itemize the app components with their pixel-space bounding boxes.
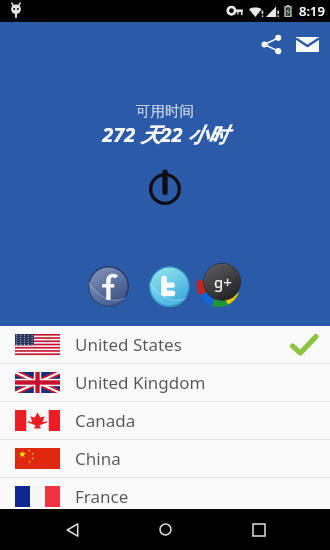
staticText: United Kingdom	[75, 371, 206, 394]
button[interactable]: Google Plus	[197, 264, 240, 307]
button[interactable]: United States	[0, 326, 330, 363]
staticText: Canada	[75, 409, 136, 432]
staticText: g+	[214, 272, 232, 292]
button[interactable]: Recents	[237, 509, 281, 550]
button[interactable]: Power	[143, 164, 187, 208]
button[interactable]: Back	[50, 509, 94, 550]
button[interactable]: Twitter	[148, 265, 190, 307]
button[interactable]: Canada	[0, 402, 330, 439]
staticText: 可用时间	[136, 102, 194, 120]
button[interactable]: United Kingdom	[0, 364, 330, 401]
staticText: China	[75, 447, 121, 470]
staticText: United States	[75, 333, 182, 356]
button[interactable]: Home	[143, 509, 187, 550]
staticText: France	[75, 485, 129, 508]
button[interactable]: China	[0, 440, 330, 477]
button[interactable]: Facebook	[87, 265, 129, 307]
staticText: 8:19	[299, 2, 325, 20]
staticText: 272 天22 小时	[102, 121, 228, 148]
button[interactable]: Mail	[291, 28, 323, 60]
button[interactable]: Share	[255, 28, 287, 60]
button[interactable]: France	[0, 478, 330, 515]
